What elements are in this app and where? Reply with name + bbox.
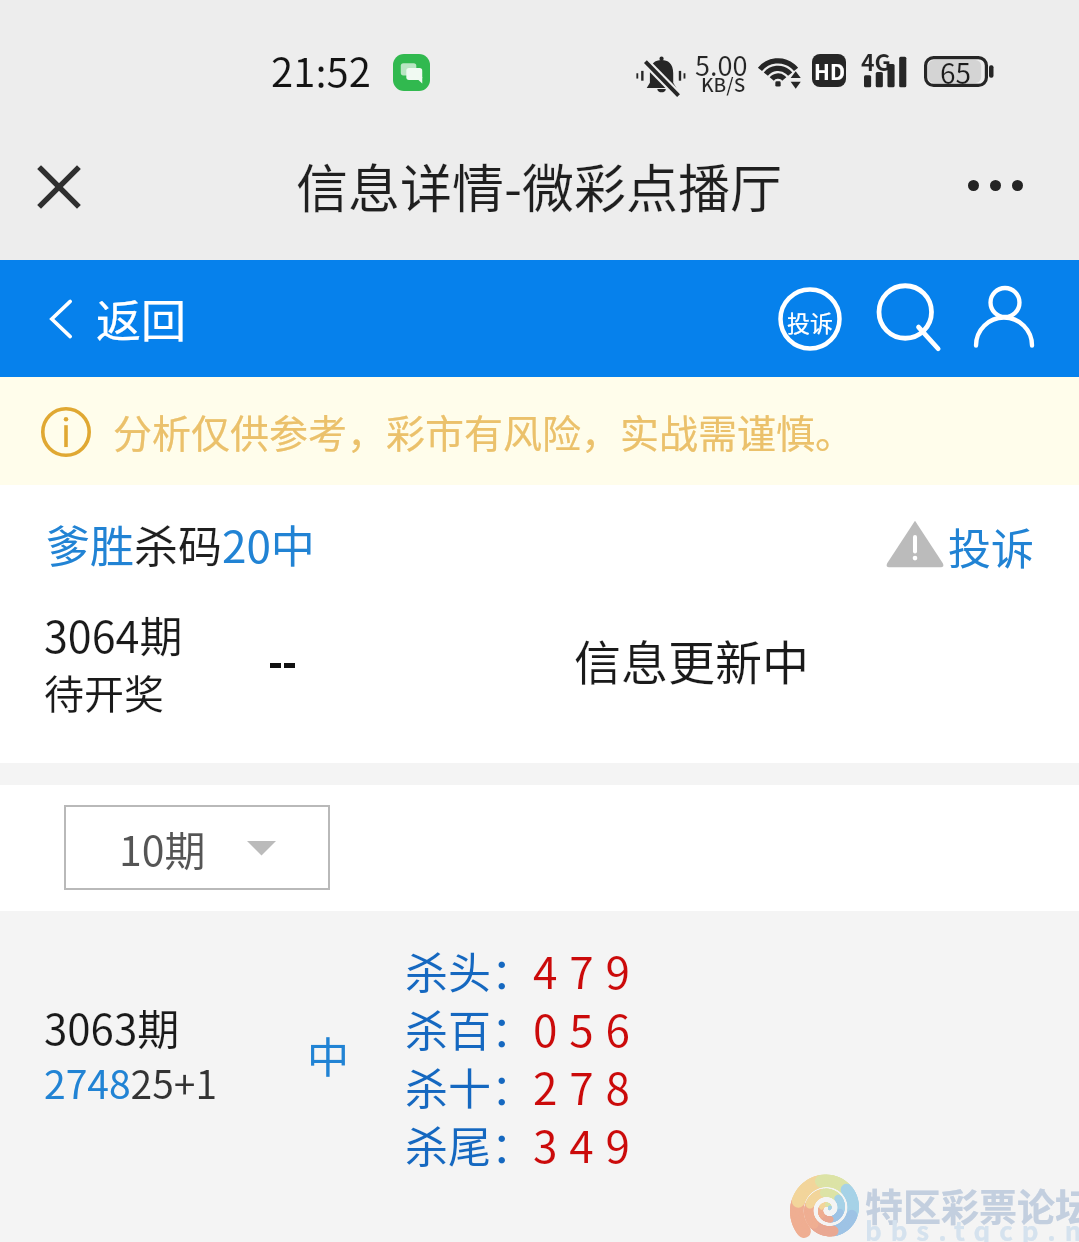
- staticText: 65: [940, 52, 972, 93]
- staticText: 信息更新中: [574, 625, 809, 693]
- staticText: 0 5 6: [533, 996, 631, 1060]
- staticText: 杀尾：: [405, 1113, 534, 1175]
- staticText: 2 7 8: [533, 1054, 631, 1118]
- staticText: 投诉: [948, 515, 1034, 577]
- staticText: 274825+1: [44, 1054, 218, 1110]
- staticText: 杀百：: [405, 997, 534, 1059]
- staticText: 杀头：: [405, 939, 534, 1001]
- staticText: 3 4 9: [533, 1112, 631, 1176]
- staticText: 21:52: [271, 41, 371, 99]
- staticText: 3064期: [44, 603, 183, 665]
- button[interactable]: 投诉: [775, 284, 845, 354]
- staticText: 特区彩票论坛: [865, 1177, 1079, 1232]
- staticText: 返回: [96, 286, 187, 351]
- staticText: 3063期: [44, 996, 180, 1057]
- button[interactable]: 返回: [40, 286, 187, 351]
- staticText: 杀十：: [405, 1055, 534, 1117]
- button[interactable]: Profile: [970, 284, 1040, 354]
- staticText: 待开奖: [44, 663, 164, 721]
- staticText: 信息详情-微彩点播厅: [296, 148, 783, 223]
- staticText: HD: [814, 56, 845, 86]
- staticText: KB/S: [701, 70, 746, 98]
- staticText: 爹胜杀码20中: [46, 512, 315, 576]
- staticText: 10期: [119, 818, 206, 877]
- staticText: 4G: [861, 44, 892, 77]
- button[interactable]: 投诉: [887, 515, 1034, 577]
- staticText: 4 7 9: [533, 938, 631, 1002]
- button[interactable]: More options: [968, 180, 1023, 191]
- staticText: 中: [307, 1024, 350, 1085]
- staticText: 分析仅供参考，彩市有风险，实战需谨慎。: [113, 403, 855, 459]
- staticText: bbs.tqcp.net: [865, 1211, 1079, 1242]
- staticText: 5.00: [695, 45, 748, 84]
- staticText: 投诉: [787, 305, 833, 338]
- button[interactable]: 10期: [64, 805, 330, 890]
- button[interactable]: Search: [872, 284, 942, 354]
- button[interactable]: Close: [23, 151, 95, 223]
